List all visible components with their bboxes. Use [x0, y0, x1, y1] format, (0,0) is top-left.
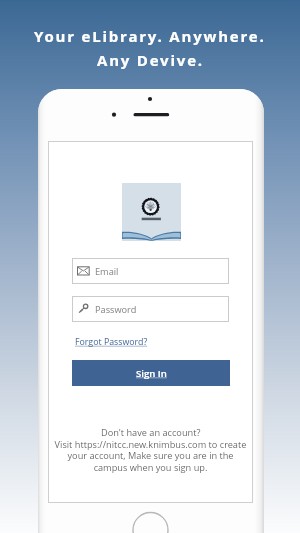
staticText: Sign In	[136, 367, 167, 380]
button[interactable]: Email	[72, 258, 229, 284]
staticText: Don't have an account?	[101, 426, 201, 439]
staticText: Email	[95, 265, 119, 278]
staticText: Any Devive.	[97, 50, 204, 70]
button[interactable]: Password	[72, 296, 229, 322]
other: Password	[77, 303, 91, 315]
staticText: Visit https://nitcc.new.knimbus.com to c…	[52, 438, 249, 474]
button[interactable]: Sign In	[72, 360, 230, 386]
staticText: Password	[95, 303, 137, 316]
staticText: Your eLibrary. Anywhere.	[34, 26, 266, 46]
staticText: Forgot Password?	[75, 336, 148, 348]
button[interactable]: Forgot Password?	[75, 336, 148, 348]
other: Email	[77, 265, 91, 277]
